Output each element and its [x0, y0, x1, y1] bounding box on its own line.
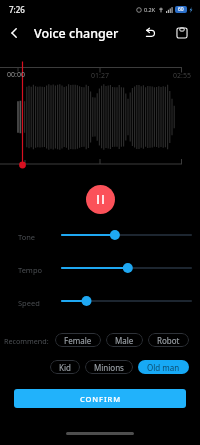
staticText: Speed	[18, 298, 40, 308]
staticText: 0.2K	[144, 6, 156, 13]
button[interactable]: Speed	[57, 295, 196, 307]
staticText: Minions	[94, 362, 124, 373]
button[interactable]: Pause	[86, 185, 115, 214]
button[interactable]: Female	[55, 333, 101, 347]
staticText: CONFIRM	[80, 394, 121, 404]
staticText: 7:26	[9, 4, 25, 15]
staticText: Kid	[59, 362, 71, 373]
button[interactable]: Robot	[148, 333, 189, 347]
staticText: 60	[178, 6, 184, 13]
button[interactable]: CONFIRM	[14, 389, 186, 408]
staticText: Voice changer	[34, 25, 119, 42]
staticText: Tempo	[18, 265, 43, 275]
staticText: 02:55	[173, 71, 191, 81]
button[interactable]: Tempo	[57, 262, 196, 274]
staticText: Female	[64, 335, 92, 346]
button[interactable]: Undo	[141, 24, 159, 42]
button[interactable]: Minions	[85, 360, 133, 374]
staticText: Robot	[157, 335, 180, 346]
staticText: 00:00	[7, 70, 25, 80]
button[interactable]: Old man	[138, 360, 189, 374]
staticText: Old man	[147, 362, 180, 373]
staticText: Male	[115, 335, 134, 346]
button[interactable]: Kid	[50, 360, 80, 374]
staticText: Tone	[18, 232, 36, 242]
button[interactable]: Back	[3, 22, 25, 44]
button[interactable]: Tone	[57, 229, 196, 241]
staticText: 01:27	[91, 71, 109, 81]
button[interactable]: Save	[173, 24, 191, 42]
staticText: Recommend:	[4, 336, 49, 346]
button[interactable]: Male	[106, 333, 143, 347]
